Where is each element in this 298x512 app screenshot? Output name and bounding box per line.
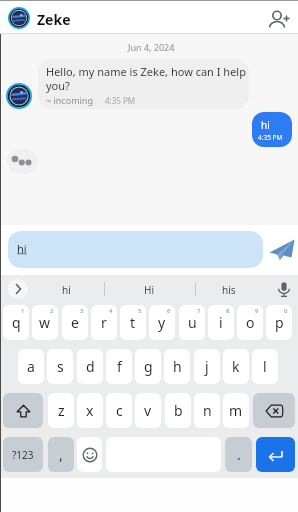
staticText: y [158,313,166,332]
button[interactable] [252,112,292,147]
staticText: 7 [197,307,201,315]
staticText: i [219,313,223,332]
staticText: 5 [138,307,142,315]
button[interactable] [3,393,43,428]
button[interactable]: d [77,349,103,384]
button[interactable]: hi [52,283,80,296]
button[interactable]: his [214,283,244,296]
button[interactable]: n [194,393,220,428]
staticText: v [144,401,152,420]
button[interactable]: s [47,349,73,384]
button[interactable]: k [223,349,249,384]
button[interactable]: y [149,305,175,340]
button[interactable]: g [135,349,161,384]
staticText: s [57,357,64,376]
staticText: ?123 [12,448,34,462]
staticText: Hello, my name is Zeke, how can I help y… [46,64,246,93]
button[interactable]: l [252,349,278,384]
staticText: e [71,313,79,332]
staticText: 2 [50,307,54,315]
staticText: 4:35 PM [105,95,136,106]
staticText: p [275,313,284,332]
staticText: c [116,401,123,420]
staticText: o [246,313,255,332]
staticText: z [58,401,65,420]
staticText: a [27,357,35,376]
staticText: Hi [144,283,154,296]
staticText: 3 [80,307,84,315]
button[interactable]: m [223,393,249,428]
button[interactable] [256,437,295,472]
button[interactable]: x [77,393,103,428]
staticText: 8 [226,307,230,315]
staticText: g [144,357,153,376]
button[interactable]: p [266,305,292,340]
staticText: d [86,357,95,376]
staticText: n [203,401,212,420]
staticText: 9 [255,307,259,315]
staticText: . [237,445,241,464]
staticText: 6 [167,307,171,315]
staticText: hi [261,118,270,132]
staticText: 0 [284,307,288,315]
button[interactable]: z [48,393,74,428]
button[interactable] [276,281,292,298]
staticText: m [229,401,243,420]
button[interactable] [253,393,295,428]
staticText: Jun 4, 2024 [128,41,175,53]
staticText: 4 [109,307,113,315]
button[interactable]: i [208,305,234,340]
button[interactable]: j [194,349,220,384]
staticText: ~ incoming [46,94,93,106]
staticText: j [205,357,209,376]
button[interactable] [38,59,249,109]
staticText: hi [17,241,27,256]
button[interactable]: Zeke [37,10,71,29]
staticText: b [174,401,183,420]
staticText: q [12,313,21,332]
staticText: f [117,357,122,376]
staticText: t [130,313,136,332]
staticText: x [86,401,94,420]
button[interactable]: c [106,393,132,428]
button[interactable] [8,231,263,268]
button[interactable] [266,9,290,31]
staticText: 4:35 PM [258,133,283,142]
button[interactable]: a [18,349,44,384]
button[interactable]: o [237,305,263,340]
button[interactable]: t [120,305,146,340]
staticText: hi [62,283,71,296]
button[interactable] [8,279,28,299]
button[interactable]: b [165,393,191,428]
button[interactable]: , [48,437,74,472]
staticText: l [263,357,267,376]
staticText: h [173,357,182,376]
staticText: his [222,283,236,296]
button[interactable] [268,238,295,261]
staticText: k [232,357,240,376]
button[interactable]: Hi [135,283,163,296]
button[interactable]: u [179,305,205,340]
button[interactable]: r [91,305,117,340]
staticText: u [188,313,197,332]
staticText: w [39,313,51,332]
staticText: , [59,445,63,464]
button[interactable]: f [106,349,132,384]
button[interactable]: q [3,305,29,340]
button[interactable]: ?123 [3,437,43,472]
button[interactable]: v [135,393,161,428]
button[interactable]: . [225,437,252,472]
button[interactable] [77,437,102,472]
button[interactable]: e [62,305,88,340]
staticText: Zeke [37,10,71,29]
staticText: 1 [21,307,25,315]
button[interactable]: h [164,349,190,384]
button[interactable]: w [32,305,58,340]
staticText: r [101,313,107,332]
